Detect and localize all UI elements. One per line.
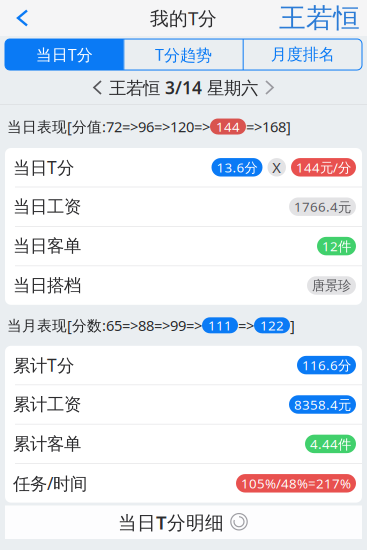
button[interactable]: Next day	[258, 72, 281, 102]
staticText: 105%/48%=217%	[241, 474, 351, 492]
staticText: 王若恒	[279, 2, 360, 34]
staticText: 当日T分明细	[118, 510, 224, 535]
staticText: 任务/时间	[13, 472, 87, 495]
staticText: =>	[238, 316, 254, 335]
staticText: 当日工资	[13, 196, 81, 217]
staticText: 累计T分	[13, 354, 74, 377]
staticText: 我的T分	[150, 6, 217, 30]
staticText: 4.44件	[310, 435, 351, 453]
staticText: 13.6分	[216, 158, 257, 176]
staticText: 当日客单	[13, 235, 81, 257]
staticText: 当日搭档	[13, 275, 81, 296]
staticText: 王若恒 3/14 星期六	[109, 76, 258, 99]
staticText: 月度排名	[271, 45, 335, 64]
button[interactable]: 当日T分明细	[5, 505, 362, 539]
button[interactable]: 当日T分	[5, 39, 123, 70]
staticText: 1766.4元	[294, 198, 351, 215]
staticText: 唐景珍	[312, 277, 351, 294]
staticText: 累计客单	[13, 433, 81, 455]
staticText: 111	[208, 316, 232, 334]
staticText: 122	[260, 316, 284, 334]
staticText: 当日表现[分值:72=>96=>120=>	[7, 117, 210, 136]
staticText: 12件	[322, 237, 351, 255]
staticText: X	[272, 158, 281, 177]
staticText: =>168]	[246, 117, 291, 136]
staticText: 当日T分	[13, 156, 74, 179]
staticText: 144元/分	[296, 158, 351, 176]
button[interactable]: T分趋势	[124, 39, 243, 70]
staticText: ]	[290, 316, 295, 335]
staticText: 累计工资	[13, 394, 81, 415]
button[interactable]: Back	[0, 0, 41, 36]
staticText: 当日T分	[36, 44, 93, 65]
button[interactable]: 月度排名	[244, 39, 362, 70]
staticText: 116.6分	[302, 356, 351, 374]
button[interactable]: 王若恒	[279, 0, 367, 36]
button[interactable]: Previous day	[86, 72, 109, 102]
staticText: T分趋势	[155, 44, 212, 65]
staticText: 144	[216, 118, 240, 135]
staticText: 8358.4元	[294, 396, 351, 413]
staticText: 当月表现[分数:65=>88=>99=>	[7, 316, 202, 335]
